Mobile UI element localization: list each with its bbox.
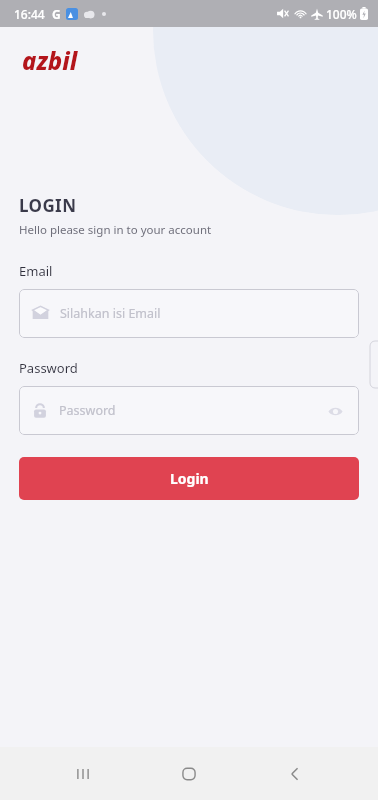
staticText: azbil: [22, 44, 78, 77]
staticText: G: [52, 6, 61, 22]
button[interactable]: Back: [272, 751, 318, 797]
staticText: Password: [19, 359, 78, 377]
button[interactable]: Toggle password visibility: [324, 400, 346, 422]
staticText: Login: [170, 469, 209, 488]
staticText: LOGIN: [19, 194, 77, 217]
staticText: Password: [59, 402, 324, 419]
button[interactable]: Login: [19, 457, 359, 500]
button[interactable]: Password: [19, 386, 359, 435]
staticText: Hello please sign in to your account: [19, 222, 212, 238]
button[interactable]: Silahkan isi Email: [19, 289, 359, 338]
button[interactable]: Recent apps: [60, 751, 106, 797]
staticText: Silahkan isi Email: [60, 305, 346, 322]
button[interactable]: Home: [166, 751, 212, 797]
staticText: Email: [19, 262, 53, 280]
staticText: 16:44: [14, 6, 45, 22]
staticText: 100%: [326, 6, 357, 22]
